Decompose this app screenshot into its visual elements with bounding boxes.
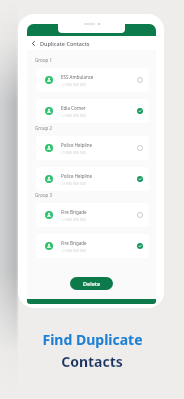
staticText: +1 000 000 000 bbox=[61, 181, 86, 186]
staticText: ESS Ambulance bbox=[61, 74, 94, 80]
staticText: Group 3 bbox=[35, 192, 53, 198]
button[interactable]: Police Helpline bbox=[36, 167, 149, 191]
staticText: +1 000 000 000 bbox=[61, 113, 86, 118]
staticText: Fire Brigade bbox=[61, 240, 87, 246]
button[interactable]: Delete bbox=[70, 277, 113, 290]
button[interactable]: Fire Brigade bbox=[36, 234, 149, 258]
button[interactable]: Edia Corner bbox=[36, 99, 149, 123]
staticText: Duplicate Contacts bbox=[40, 40, 90, 47]
staticText: +1 000 000 000 bbox=[61, 150, 86, 155]
staticText: Edia Corner bbox=[61, 105, 86, 111]
staticText: Group 1 bbox=[35, 57, 53, 63]
button[interactable]: Back bbox=[27, 36, 40, 50]
staticText: +1 000 000 000 bbox=[61, 82, 86, 87]
staticText: Fire Brigade bbox=[61, 209, 87, 215]
staticText: Police Helpline bbox=[61, 173, 93, 179]
staticText: Delete bbox=[83, 280, 101, 287]
staticText: Find Duplicate bbox=[42, 330, 143, 349]
button[interactable]: Police Helpline bbox=[36, 136, 149, 160]
staticText: Police Helpline bbox=[61, 142, 93, 148]
button[interactable]: Fire Brigade bbox=[36, 203, 149, 227]
staticText: +1 000 000 000 bbox=[61, 248, 86, 253]
staticText: Group 2 bbox=[35, 125, 53, 131]
button[interactable]: ESS Ambulance bbox=[36, 68, 149, 92]
staticText: Contacts bbox=[61, 352, 123, 371]
staticText: +1 000 000 000 bbox=[61, 217, 86, 222]
